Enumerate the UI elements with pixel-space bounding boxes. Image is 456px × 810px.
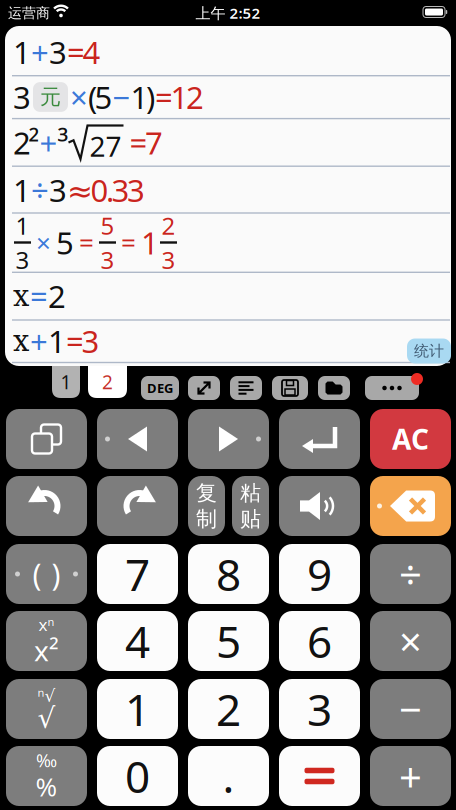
button[interactable] [188,409,269,469]
button[interactable]: 4 [97,611,178,671]
button[interactable] [279,409,360,469]
staticText: 复 [196,480,217,506]
staticText: 统计 [414,342,444,360]
staticText: xⁿ [38,613,54,636]
staticText: 1 [48,320,66,362]
button[interactable]: 2 [88,366,127,398]
staticText: 上午 2:52 [195,3,260,23]
button[interactable] [279,746,360,806]
staticText: √ [37,702,55,734]
staticText: 2 [102,369,113,395]
staticText: 7 [125,545,150,603]
staticText: + [39,122,57,163]
button[interactable]: − [370,679,451,739]
staticText: ‰ [36,748,57,772]
staticText: 4 [125,612,150,670]
button[interactable]: 3 [279,679,360,739]
staticText: 3 [13,76,31,118]
button[interactable]: xⁿ [6,611,87,671]
button[interactable] [97,409,178,469]
button[interactable]: 复 [188,476,225,536]
button[interactable]: 8 [188,544,269,604]
button[interactable]: 1 [52,366,80,398]
button[interactable]: 1 [97,679,178,739]
staticText: 3 [49,169,67,211]
staticText: AC [392,420,429,458]
staticText: 5 [100,209,114,241]
button[interactable]: 9 [279,544,360,604]
staticText: 1 [15,209,29,241]
staticText: =3 [66,320,99,362]
button[interactable] [365,376,419,400]
staticText: . [222,747,234,805]
button[interactable] [370,476,451,536]
staticText: ( [32,554,41,594]
staticText: ÷ [399,547,422,600]
staticText: x [13,279,29,313]
staticText: 0 [125,747,150,805]
staticText: 元 [40,84,61,110]
staticText: 1 [13,169,31,211]
button[interactable]: 0 [97,746,178,806]
staticText: 3 [161,244,175,276]
staticText: ≈0.33 [67,169,145,211]
staticText: 贴 [240,506,261,532]
button[interactable] [279,476,360,536]
button[interactable]: ( [6,544,87,604]
staticText: 3 [100,244,114,276]
staticText: 3 [15,244,29,276]
button[interactable]: 2 [188,679,269,739]
button[interactable]: 5 [188,611,269,671]
button[interactable]: AC [370,409,451,469]
staticText: =12 [155,76,204,118]
button[interactable] [97,476,178,536]
staticText: ) [51,554,60,594]
staticText: 2 [216,680,241,738]
staticText: 运营商 [8,4,50,22]
button[interactable]: + [370,746,451,806]
staticText: + [31,31,49,73]
staticText: = [30,275,48,317]
button[interactable]: 6 [279,611,360,671]
staticText: 2 [48,275,66,317]
staticText: % [35,769,57,804]
staticText: x [13,324,29,358]
staticText: × [36,225,51,260]
button[interactable] [272,376,308,400]
staticText: 1 [13,31,31,73]
staticText: 1 [141,222,159,263]
staticText: 27 [89,127,121,165]
staticText: − [399,682,422,735]
button[interactable]: 7 [97,544,178,604]
button[interactable]: × [370,611,451,671]
button[interactable]: 统计 [407,338,451,363]
button[interactable]: ‰ [6,746,87,806]
staticText: 6 [307,612,332,670]
button[interactable]: ÷ [370,544,451,604]
button[interactable] [6,409,87,469]
button[interactable]: . [188,746,269,806]
staticText: − [112,76,130,118]
staticText: x² [34,632,59,669]
button[interactable] [318,376,350,400]
staticText: + [399,749,422,802]
staticText: =4 [67,31,100,73]
staticText: 3 [49,31,67,73]
staticText: + [30,320,48,362]
button[interactable]: DEG [141,376,179,400]
button[interactable] [188,376,220,400]
staticText: 5 [216,612,241,670]
staticText: ⁿ√ [37,684,55,706]
staticText: 制 [196,506,217,532]
staticText: ÷ [31,169,49,211]
staticText: = [121,225,136,260]
staticText: 8 [216,545,241,603]
staticText: 2² [13,122,39,163]
button[interactable] [6,476,87,536]
staticText: DEG [147,379,173,397]
button[interactable] [230,376,262,400]
staticText: =7 [129,122,163,163]
button[interactable]: ⁿ√ [6,679,87,739]
button[interactable]: 粘 [232,476,269,536]
staticText: 粘 [240,480,261,506]
